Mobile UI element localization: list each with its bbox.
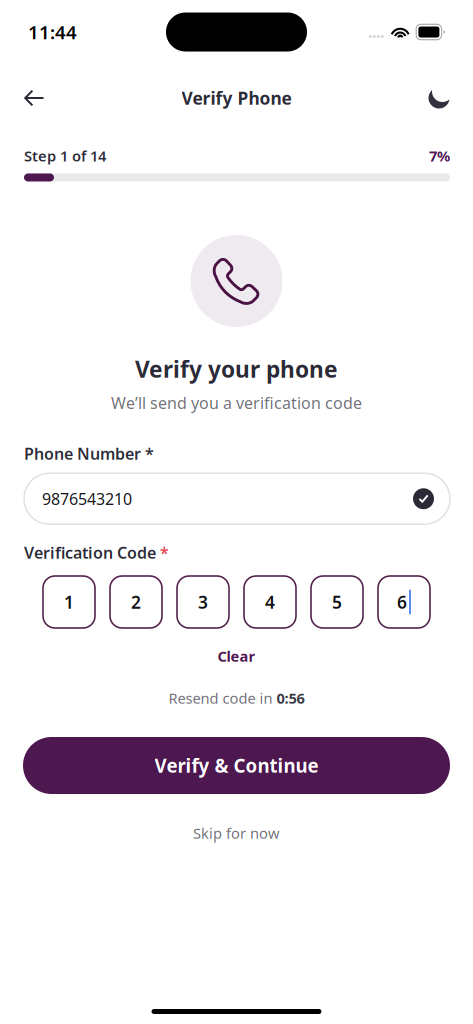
button[interactable]: 4 — [244, 576, 296, 628]
staticText: 5 — [332, 590, 342, 613]
staticText: 7% — [429, 146, 450, 165]
button[interactable]: Toggle dark mode — [417, 76, 461, 120]
button[interactable]: 5 — [311, 576, 363, 628]
staticText: .... — [368, 22, 384, 42]
staticText: 6 — [397, 590, 407, 613]
button[interactable]: Back — [12, 76, 56, 120]
button[interactable]: Verify & Continue — [23, 737, 450, 794]
button[interactable]: 6 — [378, 576, 430, 628]
button[interactable]: Skip for now — [0, 824, 473, 842]
staticText: 1 — [64, 590, 74, 613]
staticText: Verification Code — [24, 542, 160, 563]
staticText: * — [160, 542, 169, 563]
staticText: 2 — [131, 590, 141, 613]
staticText: Step 1 of 14 — [24, 146, 106, 165]
staticText: 3 — [198, 590, 208, 613]
staticText: Verify Phone — [181, 86, 291, 109]
staticText: We’ll send you a verification code — [111, 392, 362, 413]
staticText: 11:44 — [28, 20, 77, 44]
staticText: Phone Number * — [24, 443, 154, 464]
staticText: 4 — [265, 590, 275, 613]
staticText: Resend code in — [168, 688, 276, 708]
staticText: Skip for now — [193, 823, 280, 843]
button[interactable]: Clear — [0, 647, 473, 665]
staticText: Clear — [217, 646, 255, 666]
staticText: 0:56 — [276, 688, 304, 708]
staticText: Verify & Continue — [154, 753, 318, 778]
staticText: 9876543210 — [42, 488, 132, 509]
button[interactable]: 2 — [110, 576, 162, 628]
staticText: Verify your phone — [135, 354, 338, 384]
button[interactable]: 1 — [43, 576, 95, 628]
button[interactable]: 3 — [177, 576, 229, 628]
